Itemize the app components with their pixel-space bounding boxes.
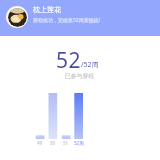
staticText: 50 xyxy=(50,140,56,146)
staticText: /52周 xyxy=(81,60,99,70)
button[interactable]: 枕上莲花 xyxy=(0,0,160,36)
staticText: 52 xyxy=(56,46,82,75)
staticText: 已参与赛程 xyxy=(65,72,94,79)
staticText: 52周 xyxy=(74,140,84,146)
staticText: 49 xyxy=(37,140,43,146)
staticText: 赛程成功，完成第52周赛挑战! xyxy=(33,17,101,24)
staticText: 枕上莲花 xyxy=(33,5,61,14)
staticText: 51 xyxy=(63,140,69,146)
